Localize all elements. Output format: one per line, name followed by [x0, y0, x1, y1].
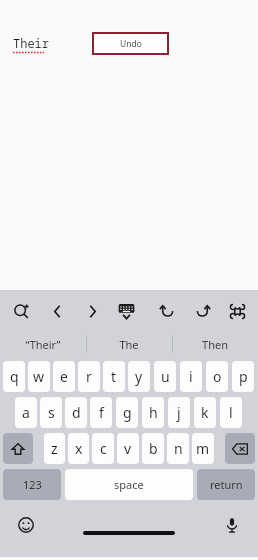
staticText: c	[100, 439, 107, 458]
button[interactable]: Undo	[153, 298, 181, 324]
staticText: y	[135, 367, 143, 386]
staticText: “Their”	[25, 337, 61, 352]
button[interactable]: e	[53, 361, 75, 392]
staticText: n	[174, 439, 183, 458]
button[interactable]: Next	[78, 298, 106, 324]
staticText: u	[161, 367, 170, 386]
button[interactable]: q	[3, 361, 25, 392]
staticText: i	[189, 367, 193, 386]
staticText: Then	[202, 337, 228, 352]
button[interactable]: d	[65, 397, 87, 428]
button[interactable]: y	[128, 361, 150, 392]
staticText: t	[111, 367, 117, 386]
button[interactable]: Search	[7, 298, 35, 324]
button[interactable]: a	[15, 397, 37, 428]
button[interactable]: h	[142, 397, 164, 428]
button[interactable]: Undo	[92, 32, 169, 55]
staticText: h	[149, 403, 158, 422]
staticText: space	[114, 477, 144, 492]
button[interactable]: Emoji	[14, 513, 38, 537]
button[interactable]: “Their”	[0, 330, 86, 358]
button[interactable]: f	[90, 397, 112, 428]
button[interactable]: v	[117, 433, 139, 464]
button[interactable]: Previous	[43, 298, 71, 324]
button[interactable]: c	[92, 433, 114, 464]
button[interactable]: z	[44, 433, 65, 464]
button[interactable]: 123	[3, 469, 61, 500]
staticText: return	[210, 477, 243, 492]
staticText: b	[149, 439, 158, 458]
staticText: The	[119, 337, 139, 352]
button[interactable]: Redo	[188, 298, 216, 324]
button[interactable]: o	[206, 361, 228, 392]
button[interactable]: g	[116, 397, 138, 428]
button[interactable]: space	[65, 469, 193, 500]
staticText: g	[123, 403, 132, 422]
staticText: r	[86, 367, 92, 386]
button[interactable]: Dictate	[220, 513, 244, 537]
button[interactable]: i	[180, 361, 202, 392]
staticText: z	[51, 439, 58, 458]
button[interactable]: n	[167, 433, 189, 464]
button[interactable]: Command	[223, 298, 251, 324]
staticText: q	[10, 367, 19, 386]
staticText: d	[72, 403, 81, 422]
staticText: v	[124, 439, 132, 458]
staticText: l	[229, 403, 233, 422]
button[interactable]: Hide keyboard	[112, 298, 140, 324]
staticText: 123	[23, 477, 42, 492]
button[interactable]: Their	[13, 35, 50, 54]
staticText: w	[33, 367, 45, 386]
staticText: Undo	[120, 38, 142, 50]
button[interactable]: r	[78, 361, 100, 392]
button[interactable]: j	[168, 397, 190, 428]
staticText: Their	[13, 35, 50, 51]
button[interactable]: The	[86, 330, 172, 358]
button[interactable]: Shift	[3, 433, 33, 464]
button[interactable]: Then	[172, 330, 258, 358]
button[interactable]: p	[232, 361, 254, 392]
button[interactable]: l	[220, 397, 242, 428]
staticText: s	[48, 403, 55, 422]
button[interactable]: t	[103, 361, 125, 392]
button[interactable]: return	[197, 469, 255, 500]
staticText: m	[196, 439, 210, 458]
staticText: o	[213, 367, 222, 386]
staticText: k	[201, 403, 209, 422]
button[interactable]: w	[28, 361, 50, 392]
staticText: x	[75, 439, 83, 458]
button[interactable]: k	[194, 397, 216, 428]
staticText: e	[60, 367, 68, 386]
staticText: f	[99, 403, 104, 422]
button[interactable]: Backspace	[225, 433, 255, 464]
button[interactable]: m	[192, 433, 214, 464]
button[interactable]: u	[154, 361, 176, 392]
staticText: p	[239, 367, 248, 386]
staticText: j	[177, 403, 181, 422]
staticText: a	[22, 403, 30, 422]
button[interactable]: x	[68, 433, 89, 464]
button[interactable]: s	[40, 397, 62, 428]
button[interactable]: b	[142, 433, 164, 464]
